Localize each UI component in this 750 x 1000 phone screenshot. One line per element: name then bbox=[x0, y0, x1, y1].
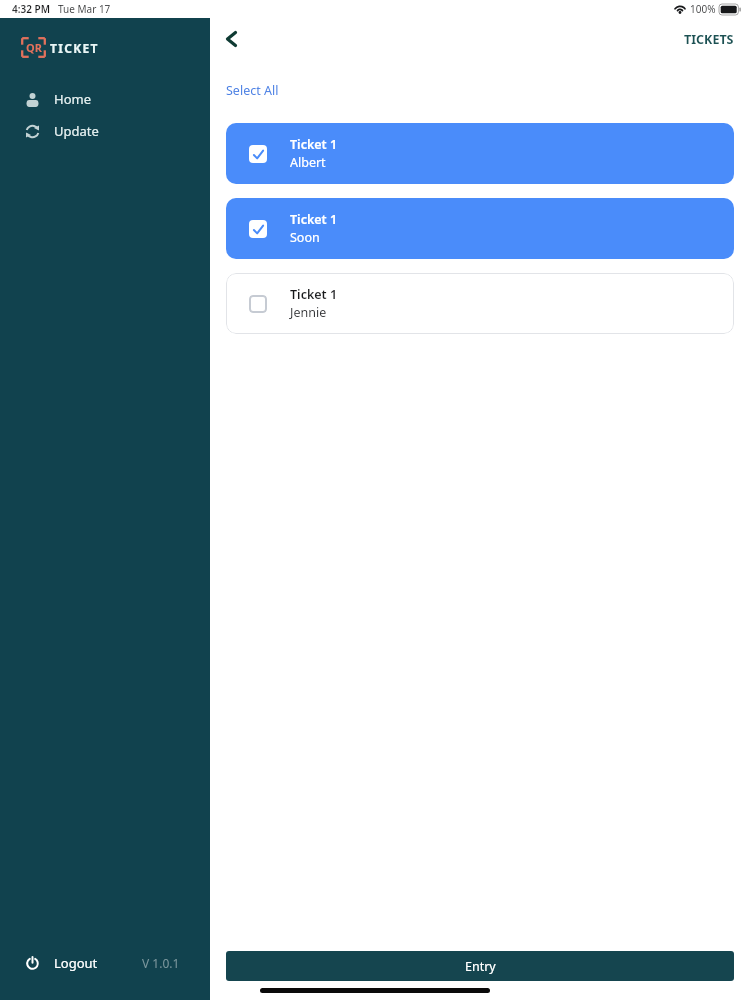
staticText: Logout bbox=[54, 954, 98, 972]
button[interactable] bbox=[249, 295, 267, 313]
staticText: 4:32 PM bbox=[12, 2, 50, 16]
staticText: QR bbox=[26, 40, 42, 55]
staticText: TICKET bbox=[50, 40, 99, 56]
button[interactable] bbox=[216, 24, 246, 54]
button[interactable]: Update bbox=[0, 116, 210, 146]
staticText: Entry bbox=[465, 958, 496, 975]
staticText: Jennie bbox=[290, 304, 327, 321]
button[interactable]: Logout bbox=[0, 949, 210, 977]
staticText: Select All bbox=[226, 82, 279, 99]
staticText: Albert bbox=[290, 154, 326, 171]
staticText: Ticket 1 bbox=[290, 136, 338, 153]
button[interactable] bbox=[249, 220, 267, 238]
button[interactable]: Select All bbox=[226, 82, 279, 99]
button[interactable]: Ticket 1 bbox=[226, 198, 734, 259]
button[interactable] bbox=[249, 145, 267, 163]
staticText: Home bbox=[54, 90, 91, 108]
staticText: TICKETS bbox=[684, 31, 734, 48]
staticText: Tue Mar 17 bbox=[58, 2, 111, 16]
staticText: Ticket 1 bbox=[290, 286, 338, 303]
button[interactable]: Ticket 1 bbox=[226, 273, 734, 334]
staticText: 100% bbox=[690, 2, 716, 16]
staticText: V 1.0.1 bbox=[142, 955, 180, 971]
staticText: Soon bbox=[290, 229, 320, 246]
button[interactable]: Ticket 1 bbox=[226, 123, 734, 184]
staticText: Ticket 1 bbox=[290, 211, 338, 228]
button[interactable]: Entry bbox=[226, 951, 734, 981]
staticText: Update bbox=[54, 122, 99, 140]
button[interactable]: Home bbox=[0, 84, 210, 114]
